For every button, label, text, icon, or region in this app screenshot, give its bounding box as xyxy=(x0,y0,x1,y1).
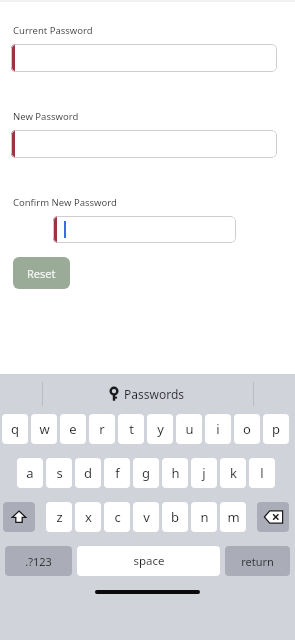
button[interactable]: space xyxy=(77,546,220,576)
button[interactable]: c xyxy=(104,502,130,532)
staticText: h xyxy=(171,464,180,482)
staticText: k xyxy=(230,464,237,482)
staticText: f xyxy=(115,464,120,482)
staticText: a xyxy=(26,464,34,482)
button[interactable]: p xyxy=(263,414,289,444)
button[interactable]: h xyxy=(162,458,188,488)
button[interactable]: u xyxy=(176,414,202,444)
button[interactable]: e xyxy=(60,414,86,444)
button[interactable]: q xyxy=(2,414,28,444)
staticText: Passwords xyxy=(124,386,185,402)
staticText: t xyxy=(129,420,134,438)
button[interactable] xyxy=(11,44,277,72)
staticText: x xyxy=(85,508,92,526)
staticText: Confirm New Password xyxy=(13,196,117,209)
staticText: g xyxy=(142,464,150,482)
button[interactable]: Backspace xyxy=(257,502,289,532)
button[interactable]: y xyxy=(147,414,173,444)
staticText: p xyxy=(272,420,280,438)
button[interactable]: w xyxy=(31,414,57,444)
button[interactable]: m xyxy=(220,502,246,532)
button[interactable]: d xyxy=(75,458,101,488)
staticText: l xyxy=(260,464,264,482)
button[interactable]: z xyxy=(46,502,72,532)
button[interactable]: f xyxy=(104,458,130,488)
button[interactable]: g xyxy=(133,458,159,488)
staticText: q xyxy=(11,420,19,438)
staticText: space xyxy=(133,553,165,569)
button[interactable]: v xyxy=(133,502,159,532)
button[interactable]: b xyxy=(162,502,188,532)
button[interactable]: Passwords xyxy=(110,386,185,402)
button[interactable]: return xyxy=(225,546,290,576)
button[interactable]: Shift xyxy=(3,502,35,532)
button[interactable]: Reset xyxy=(13,257,70,289)
button[interactable]: i xyxy=(205,414,231,444)
staticText: r xyxy=(99,420,105,438)
staticText: m xyxy=(227,508,240,526)
staticText: u xyxy=(185,420,194,438)
button[interactable]: k xyxy=(220,458,246,488)
button[interactable]: n xyxy=(191,502,217,532)
staticText: i xyxy=(216,420,220,438)
staticText: .?123 xyxy=(25,554,52,569)
button[interactable]: l xyxy=(249,458,275,488)
staticText: n xyxy=(200,508,209,526)
button[interactable]: t xyxy=(118,414,144,444)
button[interactable] xyxy=(11,130,277,158)
staticText: return xyxy=(241,554,274,569)
staticText: y xyxy=(157,420,164,438)
staticText: Current Password xyxy=(13,24,93,37)
staticText: b xyxy=(171,508,179,526)
staticText: v xyxy=(143,508,150,526)
button[interactable] xyxy=(53,216,236,243)
button[interactable]: .?123 xyxy=(5,546,72,576)
staticText: New Password xyxy=(13,110,79,123)
staticText: d xyxy=(84,464,92,482)
staticText: o xyxy=(243,420,251,438)
staticText: c xyxy=(114,508,121,526)
button[interactable]: o xyxy=(234,414,260,444)
staticText: Reset xyxy=(27,266,56,281)
staticText: z xyxy=(56,508,63,526)
button[interactable]: x xyxy=(75,502,101,532)
button[interactable]: r xyxy=(89,414,115,444)
staticText: w xyxy=(39,420,50,438)
button[interactable]: a xyxy=(17,458,43,488)
button[interactable]: j xyxy=(191,458,217,488)
button[interactable]: s xyxy=(46,458,72,488)
staticText: e xyxy=(69,420,77,438)
staticText: s xyxy=(56,464,63,482)
staticText: j xyxy=(202,464,206,482)
